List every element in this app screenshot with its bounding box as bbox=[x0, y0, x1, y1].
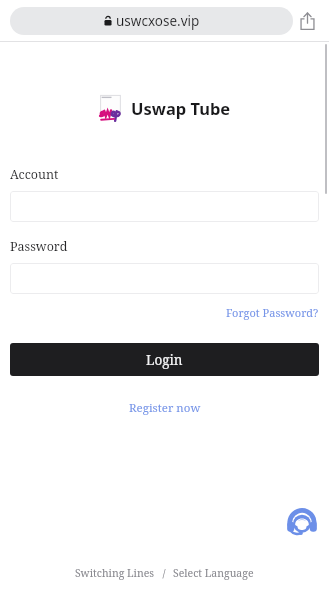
staticText: Login bbox=[146, 351, 183, 369]
staticText: Select Language bbox=[173, 566, 254, 580]
staticText: Forgot Password? bbox=[226, 305, 319, 320]
button[interactable] bbox=[10, 263, 319, 294]
button[interactable]: Forgot Password? bbox=[226, 303, 329, 322]
button[interactable]: Login bbox=[10, 343, 319, 376]
staticText: Password bbox=[10, 238, 68, 255]
button[interactable]: Customer support bbox=[285, 506, 319, 540]
button[interactable]: Uswap Tube bbox=[0, 94, 329, 122]
button[interactable]: uswcxose.vip bbox=[10, 7, 293, 35]
staticText: Register now bbox=[129, 400, 201, 416]
staticText: uswcxose.vip bbox=[116, 12, 200, 30]
staticText: Switching Lines bbox=[75, 566, 155, 580]
button[interactable] bbox=[10, 191, 319, 222]
staticText: Account bbox=[10, 166, 59, 183]
button[interactable]: Share bbox=[293, 7, 321, 35]
button[interactable]: Register now bbox=[121, 398, 209, 418]
button[interactable]: Select Language bbox=[171, 564, 256, 582]
staticText: / bbox=[157, 566, 171, 580]
staticText: Uswap Tube bbox=[131, 97, 231, 119]
button[interactable]: Switching Lines bbox=[73, 564, 157, 582]
